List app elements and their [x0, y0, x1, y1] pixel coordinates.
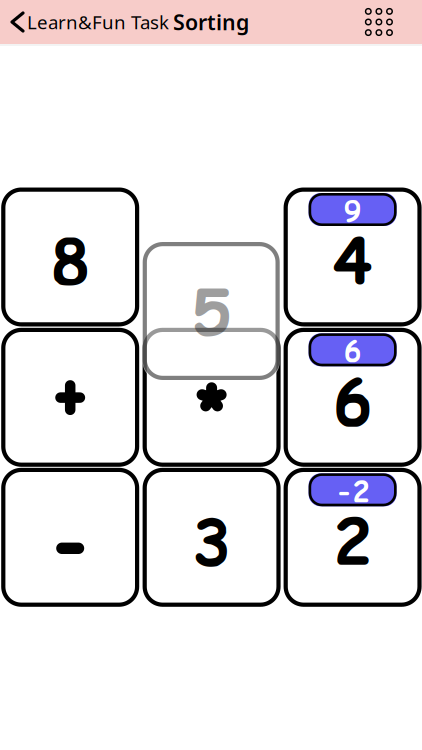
- button[interactable]: 4: [284, 187, 422, 326]
- staticText: Learn&Fun Task: [27, 10, 169, 34]
- staticText: Sorting: [173, 8, 249, 36]
- staticText: 6: [334, 360, 372, 447]
- button[interactable]: 8: [1, 187, 139, 326]
- staticText: 3: [193, 500, 231, 587]
- staticText: 8: [51, 218, 89, 306]
- button[interactable]: 3: [143, 468, 281, 607]
- button[interactable]: Learn&Fun Task: [0, 10, 169, 34]
- staticText: -2: [336, 472, 370, 511]
- button[interactable]: Plus: [1, 328, 139, 467]
- button[interactable]: 2: [284, 468, 422, 607]
- staticText: 4: [334, 217, 372, 305]
- staticText: 9: [344, 191, 361, 231]
- button[interactable]: 6: [284, 328, 422, 467]
- staticText: 2: [334, 498, 372, 585]
- button[interactable]: Menu: [365, 8, 422, 36]
- button[interactable]: Multiply: [143, 328, 281, 467]
- button[interactable]: Minus: [1, 468, 139, 607]
- staticText: 6: [344, 332, 361, 371]
- staticText: 5: [192, 269, 230, 357]
